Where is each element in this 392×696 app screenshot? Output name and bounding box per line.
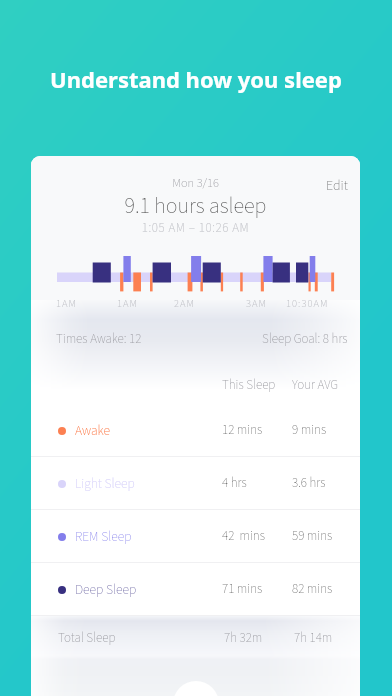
- staticText: 3.6 hrs: [292, 474, 326, 493]
- staticText: 4 hrs: [222, 474, 292, 493]
- staticText: 3AM: [246, 296, 268, 311]
- button[interactable]: Add sleep entry: [173, 681, 219, 696]
- staticText: Awake: [75, 421, 222, 440]
- staticText: 12 mins: [222, 421, 292, 440]
- staticText: Mon 3/16: [31, 174, 360, 192]
- staticText: Total Sleep: [58, 629, 224, 648]
- staticText: This Sleep: [222, 376, 292, 395]
- button[interactable]: Edit: [314, 166, 360, 206]
- staticText: Deep Sleep: [75, 580, 222, 599]
- staticText: REM Sleep: [75, 527, 222, 546]
- staticText: 1AM: [117, 296, 139, 311]
- button[interactable]: REM Sleep: [31, 510, 360, 563]
- staticText: 9 mins: [292, 421, 327, 440]
- button[interactable]: Light Sleep: [31, 457, 360, 510]
- staticText: 1AM: [56, 296, 78, 311]
- button[interactable]: Deep Sleep: [31, 563, 360, 616]
- staticText: Times Awake: 12: [56, 330, 142, 349]
- staticText: 42 mins: [222, 527, 292, 546]
- staticText: 1:05 AM – 10:26 AM: [31, 219, 360, 238]
- staticText: 10:30AM: [286, 296, 329, 311]
- staticText: Edit: [326, 176, 348, 196]
- staticText: Light Sleep: [75, 474, 222, 493]
- staticText: Understand how you sleep: [0, 64, 392, 94]
- staticText: 9.1 hours asleep: [31, 190, 360, 221]
- staticText: 59 mins: [292, 527, 333, 546]
- staticText: 7h 14m: [294, 629, 333, 648]
- staticText: 7h 32m: [224, 629, 294, 648]
- button[interactable]: Awake: [31, 404, 360, 457]
- staticText: 2AM: [174, 296, 196, 311]
- staticText: Your AVG: [292, 376, 339, 395]
- staticText: 71 mins: [222, 580, 292, 599]
- staticText: Sleep Goal: 8 hrs: [262, 330, 348, 349]
- staticText: 82 mins: [292, 580, 333, 599]
